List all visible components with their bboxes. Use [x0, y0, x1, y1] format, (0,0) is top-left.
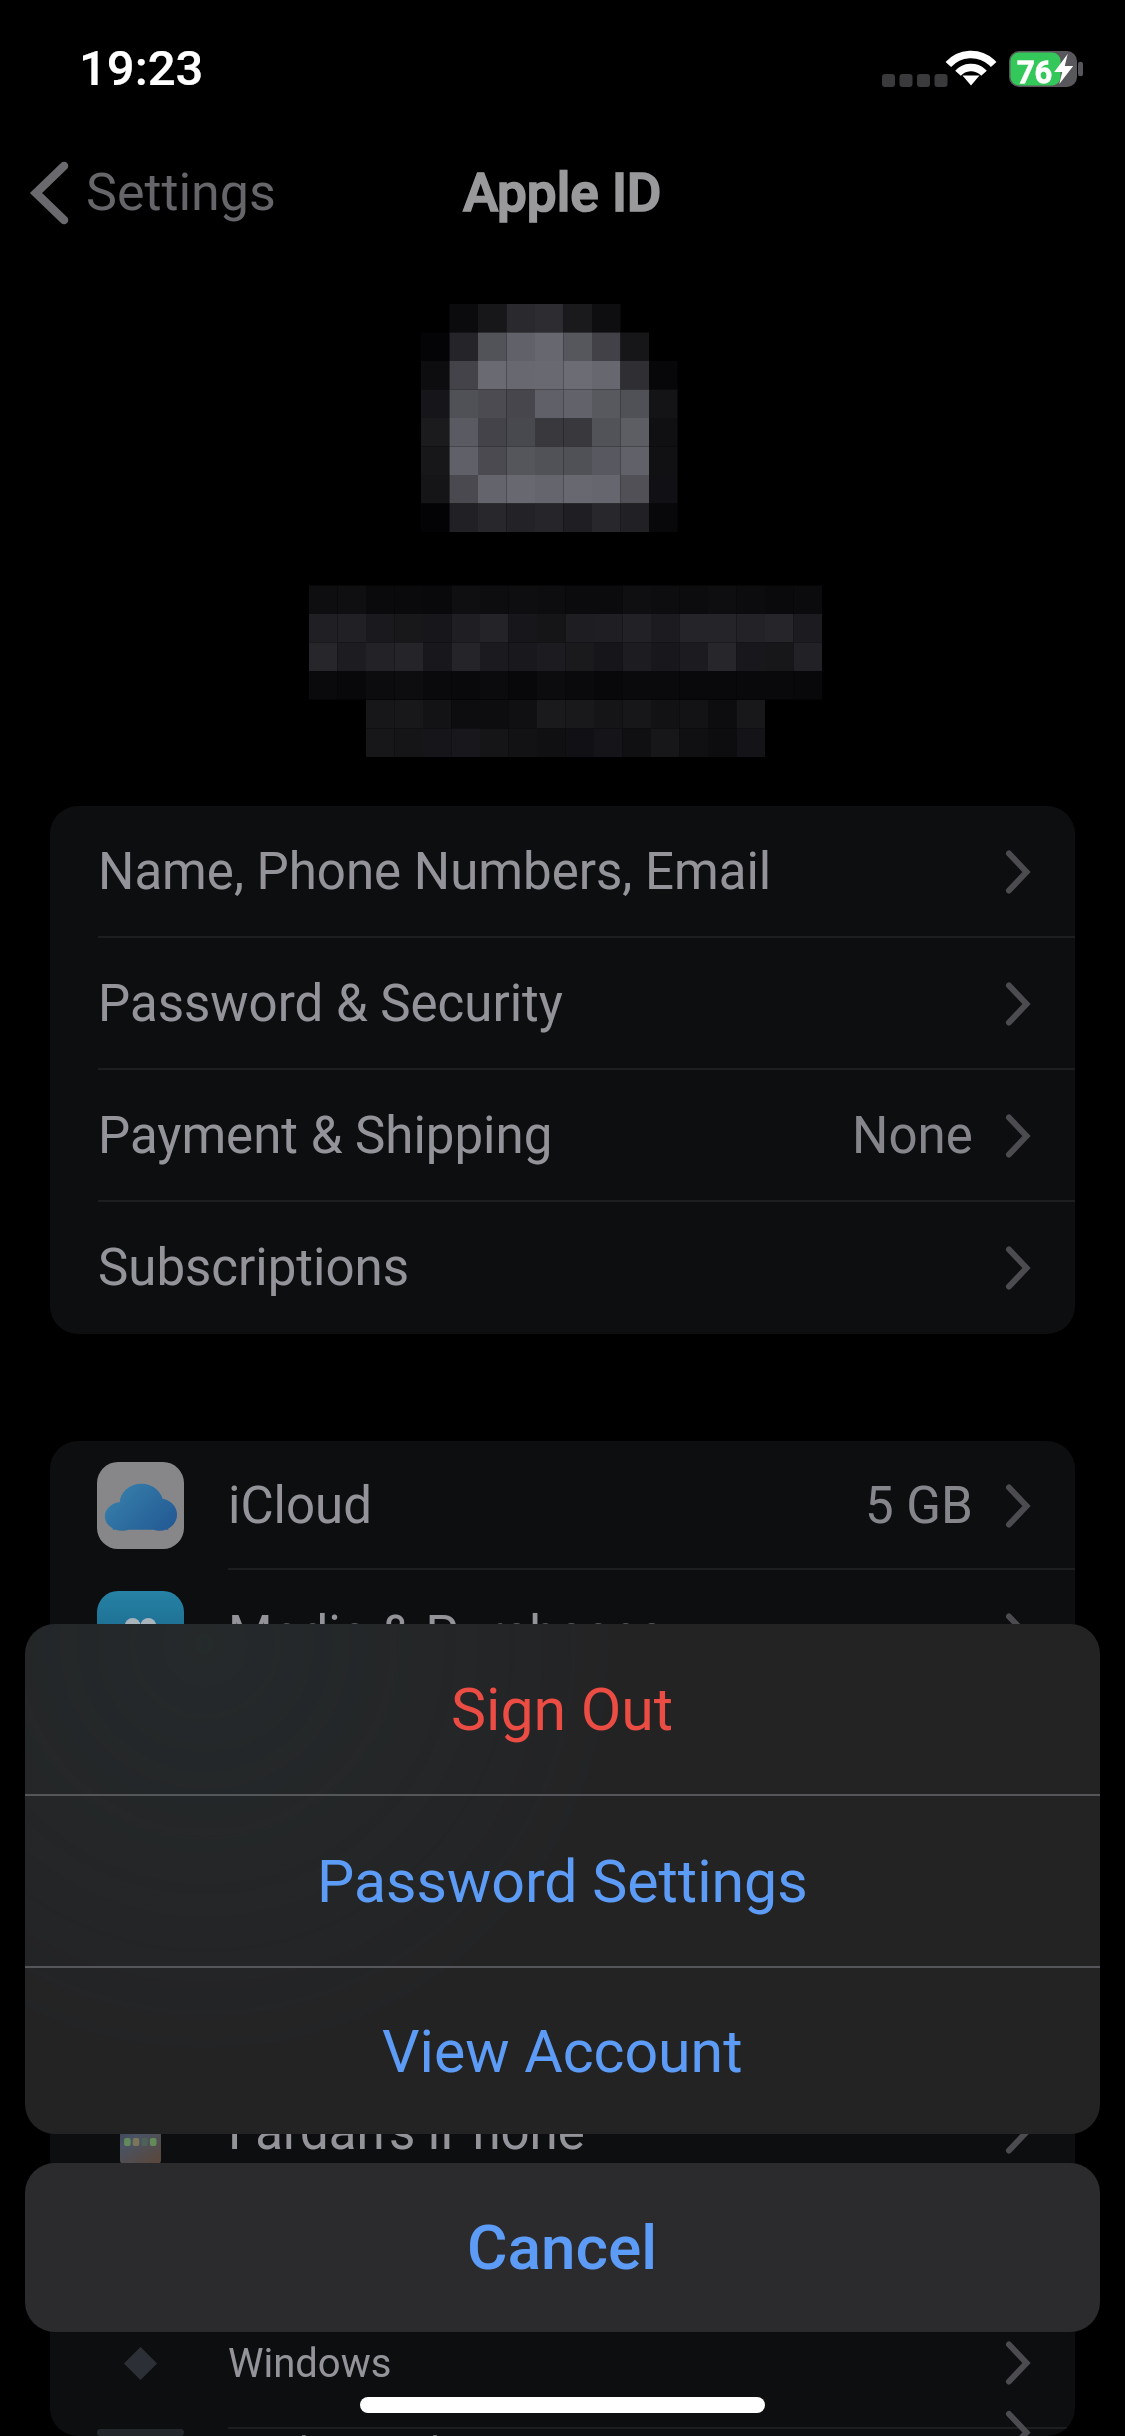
button[interactable]: Password Settings — [25, 1796, 1100, 1966]
staticText: None — [852, 1106, 973, 1166]
staticText: Subscriptions — [98, 1238, 410, 1298]
staticText: View Account — [382, 2017, 743, 2086]
button[interactable]: Subscriptions — [50, 1202, 1075, 1334]
button[interactable]: Name, Phone Numbers, Email — [50, 806, 1075, 938]
staticText: 76 — [1017, 54, 1053, 90]
staticText: Apple ID — [463, 162, 662, 224]
staticText: Payment & Shipping — [98, 1106, 553, 1166]
staticText: Cancel — [467, 2211, 658, 2284]
button[interactable]: Family Sharing — [50, 1828, 1075, 1957]
staticText: 5 GB — [865, 1476, 973, 1536]
staticText: Sign Out — [451, 1675, 674, 1744]
button[interactable]: Back to Settings — [24, 162, 286, 223]
staticText: iCloud — [228, 1476, 372, 1536]
staticText: Name, Phone Numbers, Email — [98, 842, 772, 902]
button[interactable]: iPad — [50, 2198, 1075, 2297]
button[interactable]: View Account — [25, 1968, 1100, 2134]
staticText: Password & Security — [98, 974, 563, 1034]
staticText: Apple Watch — [228, 2429, 453, 2436]
staticText: 19:23 — [79, 40, 204, 97]
staticText: Media & Purchases — [228, 1605, 665, 1665]
staticText: Fardan's iPhone — [228, 2102, 585, 2162]
staticText: Windows — [228, 2340, 392, 2387]
button[interactable]: iCloud — [50, 1441, 1075, 1570]
staticText: Family Sharing — [228, 1863, 562, 1923]
button[interactable]: Apple Watch — [50, 2429, 1075, 2436]
button[interactable]: Media & Purchases — [50, 1570, 1075, 1699]
button[interactable]: Password & Security — [50, 938, 1075, 1070]
staticText: Settings — [86, 162, 276, 223]
button[interactable]: Sign Out — [25, 1624, 1100, 1794]
staticText: Password Settings — [317, 1847, 808, 1916]
button[interactable]: Find My — [50, 1699, 1075, 1828]
button[interactable]: Fardan's iPhone — [50, 2066, 1075, 2198]
button[interactable]: Cancel — [25, 2163, 1100, 2332]
button[interactable]: Windows — [50, 2297, 1075, 2429]
button[interactable]: Payment & Shipping — [50, 1070, 1075, 1202]
